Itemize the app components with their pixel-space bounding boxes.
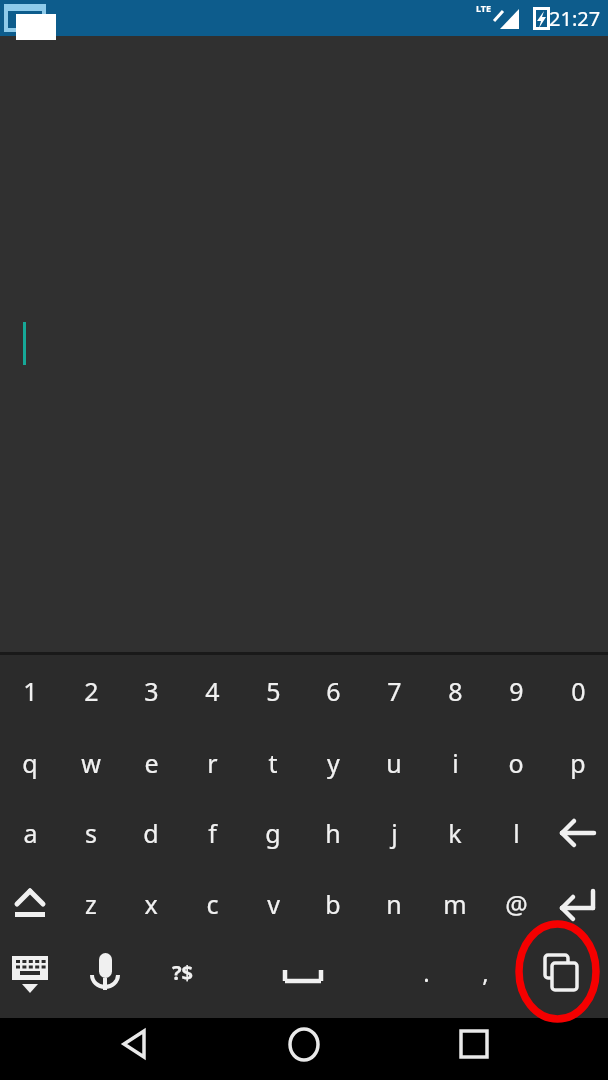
button[interactable]: Enter xyxy=(548,874,608,934)
button[interactable]: d xyxy=(121,803,181,863)
staticText: l xyxy=(513,816,520,850)
button[interactable]: 0 xyxy=(548,661,608,721)
button[interactable]: r xyxy=(182,733,242,793)
button[interactable]: p xyxy=(548,733,608,793)
button[interactable]: 3 xyxy=(121,661,181,721)
staticText: a xyxy=(23,816,38,850)
button[interactable]: 2 xyxy=(61,661,121,721)
button[interactable]: Shift xyxy=(0,874,60,934)
button[interactable]: b xyxy=(303,874,363,934)
button[interactable]: 6 xyxy=(303,661,363,721)
staticText: 3 xyxy=(144,674,159,708)
button[interactable]: m xyxy=(425,874,485,934)
staticText: y xyxy=(327,746,340,780)
button[interactable]: c xyxy=(182,874,242,934)
button[interactable]: ?$ xyxy=(152,942,212,1002)
button[interactable]: . xyxy=(396,942,456,1002)
button[interactable]: j xyxy=(364,803,424,863)
button[interactable]: Home xyxy=(274,1018,334,1070)
staticText: m xyxy=(443,887,467,921)
button[interactable]: 5 xyxy=(243,661,303,721)
button[interactable]: h xyxy=(303,803,363,863)
button[interactable]: f xyxy=(182,803,242,863)
button[interactable] xyxy=(0,36,608,652)
button[interactable]: y xyxy=(303,733,363,793)
staticText: h xyxy=(325,816,341,850)
staticText: 0 xyxy=(571,674,586,708)
staticText: t xyxy=(268,746,278,780)
staticText: f xyxy=(208,816,217,850)
button[interactable]: 8 xyxy=(425,661,485,721)
button[interactable]: t xyxy=(243,733,303,793)
button[interactable]: u xyxy=(364,733,424,793)
button[interactable]: 7 xyxy=(364,661,424,721)
button[interactable]: n xyxy=(364,874,424,934)
button[interactable]: Space xyxy=(243,942,363,1002)
staticText: p xyxy=(570,746,586,780)
staticText: 2 xyxy=(84,674,99,708)
staticText: 7 xyxy=(387,674,402,708)
staticText: u xyxy=(386,746,402,780)
staticText: b xyxy=(325,887,341,921)
staticText: z xyxy=(85,887,97,921)
staticText: e xyxy=(144,746,159,780)
staticText: q xyxy=(22,746,38,780)
button[interactable]: Recent apps xyxy=(444,1018,504,1070)
button[interactable]: Back xyxy=(104,1018,164,1070)
button[interactable]: a xyxy=(0,803,60,863)
staticText: LTE xyxy=(476,2,492,14)
button[interactable]: @ xyxy=(486,874,546,934)
button[interactable]: 4 xyxy=(182,661,242,721)
staticText: , xyxy=(482,956,489,989)
staticText: 1 xyxy=(23,674,38,708)
staticText: @ xyxy=(505,887,528,921)
button[interactable]: , xyxy=(455,942,515,1002)
button[interactable]: i xyxy=(425,733,485,793)
button[interactable]: w xyxy=(61,733,121,793)
button[interactable]: g xyxy=(243,803,303,863)
button[interactable]: k xyxy=(425,803,485,863)
staticText: j xyxy=(391,816,398,850)
staticText: i xyxy=(452,746,459,780)
staticText: s xyxy=(85,816,97,850)
button[interactable]: Hide keyboard xyxy=(0,942,60,1002)
staticText: 4 xyxy=(205,674,220,708)
staticText: 6 xyxy=(326,674,341,708)
staticText: w xyxy=(81,746,101,780)
button[interactable]: l xyxy=(486,803,546,863)
staticText: v xyxy=(267,887,280,921)
button[interactable]: o xyxy=(486,733,546,793)
button[interactable]: 9 xyxy=(486,661,546,721)
staticText: n xyxy=(386,887,402,921)
staticText: k xyxy=(448,816,462,850)
button[interactable]: v xyxy=(243,874,303,934)
staticText: . xyxy=(423,956,430,989)
staticText: c xyxy=(206,887,219,921)
button[interactable]: z xyxy=(61,874,121,934)
button[interactable]: s xyxy=(61,803,121,863)
staticText: 21:27 xyxy=(549,5,601,32)
staticText: g xyxy=(265,816,281,850)
button[interactable]: e xyxy=(121,733,181,793)
button[interactable]: 1 xyxy=(0,661,60,721)
staticText: x xyxy=(144,887,158,921)
staticText: 9 xyxy=(509,674,524,708)
button[interactable]: Clipboard xyxy=(530,942,590,1002)
staticText: 8 xyxy=(448,674,463,708)
button[interactable]: Voice input xyxy=(75,942,135,1002)
staticText: r xyxy=(207,746,218,780)
button[interactable]: x xyxy=(121,874,181,934)
button[interactable]: Backspace xyxy=(548,803,608,863)
staticText: o xyxy=(508,746,524,780)
button[interactable]: q xyxy=(0,733,60,793)
staticText: 5 xyxy=(266,674,281,708)
staticText: d xyxy=(143,816,159,850)
staticText: ?$ xyxy=(172,959,193,986)
